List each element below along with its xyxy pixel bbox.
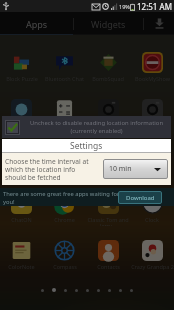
button[interactable]: Compass <box>43 226 86 273</box>
button[interactable]: Camera <box>86 85 130 132</box>
staticText: Browser <box>11 122 33 129</box>
staticText: Apps <box>26 18 48 30</box>
staticText: Chaton <box>55 169 74 176</box>
button[interactable]: Calculator <box>43 85 86 132</box>
staticText: Block Puzzle <box>6 75 38 82</box>
staticText: Calendar <box>140 169 164 176</box>
button[interactable]: 10 min <box>103 159 168 179</box>
staticText: Settings <box>70 140 103 152</box>
staticText: Camera <box>142 122 163 129</box>
staticText: Choose the time interval at which the lo… <box>5 157 98 182</box>
button[interactable]: Apps <box>0 12 73 35</box>
staticText: Chrome <box>54 216 75 223</box>
staticText: BookMyShow <box>135 75 170 82</box>
staticText: Car Mode <box>9 169 35 176</box>
button[interactable]: Chaton <box>43 132 86 179</box>
staticText: BombSquad <box>92 75 124 82</box>
button[interactable]: Clock <box>130 179 174 226</box>
staticText: 12:51 AM <box>137 1 172 12</box>
staticText: Compass <box>53 263 77 270</box>
staticText: Widgets <box>91 18 126 30</box>
staticText: Clock <box>145 216 159 223</box>
button[interactable]: Classic Tom and Jerry... <box>86 179 130 226</box>
button[interactable]: Block Puzzle <box>0 38 43 85</box>
staticText: There are some great free apps waiting f… <box>3 190 121 205</box>
button[interactable]: Download <box>118 191 162 204</box>
button[interactable]: BookMyShow <box>130 38 174 85</box>
staticText: 12:51 AM <box>137 1 172 12</box>
button[interactable]: Download <box>144 12 174 35</box>
staticText: 19% <box>119 3 130 10</box>
staticText: ColorNote <box>8 263 35 270</box>
button[interactable]: Uncheck to disable reading location info… <box>2 116 171 138</box>
button[interactable]: ChatON <box>0 179 43 226</box>
button[interactable]: Widgets <box>74 12 143 35</box>
button[interactable]: Bluetooth Chat <box>43 38 86 85</box>
staticText: Bluetooth Chat <box>45 75 84 82</box>
staticText: ChatON <box>11 216 32 223</box>
button[interactable]: BombSquad <box>86 38 130 85</box>
staticText: 19% <box>119 3 130 10</box>
staticText: Uncheck to disable reading location info… <box>24 119 169 135</box>
staticText: Classic Tom and Jerry... <box>86 216 130 226</box>
button[interactable]: Camera <box>130 85 174 132</box>
staticText: Camera <box>98 122 119 129</box>
staticText: 10 min <box>109 164 132 174</box>
button[interactable]: Chrome <box>43 179 86 226</box>
button[interactable]: CCleaner <box>86 132 130 179</box>
button[interactable]: Calendar <box>130 132 174 179</box>
button[interactable]: Browser <box>0 85 43 132</box>
button[interactable]: Car Mode <box>0 132 43 179</box>
staticText: Contacts <box>97 263 120 270</box>
button[interactable]: ColorNote <box>0 226 43 273</box>
button[interactable]: Crazy Grandpa 2 <box>130 226 174 273</box>
staticText: CCleaner <box>96 169 120 176</box>
staticText: Calculator <box>51 122 78 129</box>
staticText: Crazy Grandpa 2 <box>131 263 174 270</box>
button[interactable]: Contacts <box>86 226 130 273</box>
staticText: Download <box>126 194 155 202</box>
